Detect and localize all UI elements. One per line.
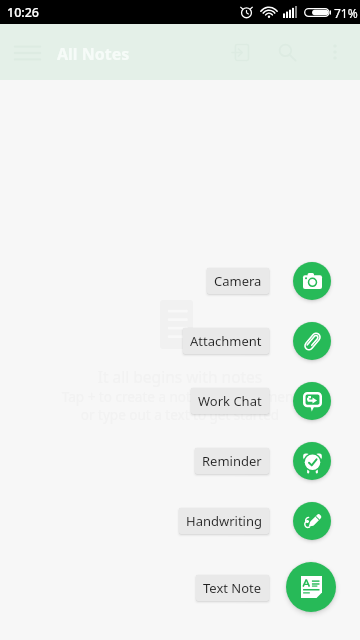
staticText: Text Note (203, 579, 262, 597)
staticText: Handwriting (186, 512, 262, 530)
button[interactable]: Attachment (293, 322, 331, 360)
staticText: Work Chat (198, 392, 262, 410)
button[interactable]: Camera (207, 268, 269, 294)
staticText: Camera (214, 272, 262, 290)
button[interactable]: Attachment (183, 328, 269, 354)
staticText: All Notes (57, 43, 130, 65)
button[interactable]: Handwriting (179, 508, 269, 534)
button[interactable]: Text Note (196, 575, 269, 601)
staticText: It all begins with notes (0, 366, 360, 387)
staticText: Reminder (202, 452, 262, 470)
button[interactable]: Reminder (293, 442, 331, 480)
staticText: Attachment (190, 332, 262, 350)
button[interactable]: New text note (286, 562, 336, 612)
button[interactable]: Work Chat (293, 382, 331, 420)
button[interactable]: Work Chat (191, 388, 269, 414)
button[interactable]: Camera (293, 262, 331, 300)
staticText: Tap + to create a note, an attachment or… (0, 388, 360, 424)
staticText: 10:26 (7, 4, 40, 21)
staticText: 71% (334, 5, 358, 21)
button[interactable]: Reminder (195, 448, 269, 474)
button[interactable]: Handwriting (293, 502, 331, 540)
